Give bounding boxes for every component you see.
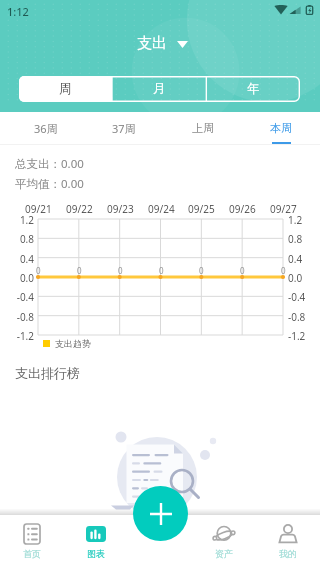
staticText: 月 xyxy=(153,81,166,97)
staticText: 支出 xyxy=(137,34,167,53)
staticText: 0 xyxy=(36,265,41,276)
staticText: 0.0 xyxy=(288,271,303,285)
staticText: -0.8 xyxy=(1,310,34,324)
staticText: 年 xyxy=(247,81,260,97)
staticText: -1.2 xyxy=(1,329,34,343)
staticText: -0.4 xyxy=(288,290,306,304)
staticText: 0 xyxy=(77,265,82,276)
staticText: 0 xyxy=(159,265,164,276)
staticText: 09/23 xyxy=(107,202,134,216)
staticText: 09/21 xyxy=(25,202,52,216)
staticText: 09/26 xyxy=(229,202,256,216)
staticText: 0.0 xyxy=(1,271,34,285)
staticText: 36周 xyxy=(34,121,58,136)
staticText: 0 xyxy=(118,265,123,276)
staticText: 总支出：0.00 xyxy=(15,156,84,172)
button[interactable]: 本周 xyxy=(242,112,320,145)
staticText: 支出排行榜 xyxy=(15,365,80,381)
staticText: 上周 xyxy=(192,121,214,135)
staticText: 本周 xyxy=(270,121,292,135)
staticText: 图表 xyxy=(87,548,105,559)
staticText: -0.4 xyxy=(1,290,34,304)
button[interactable]: 上周 xyxy=(164,112,242,145)
staticText: 周 xyxy=(59,81,72,97)
staticText: 首页 xyxy=(23,548,41,559)
staticText: 0 xyxy=(199,265,204,276)
staticText: 0 xyxy=(281,265,286,276)
staticText: -0.8 xyxy=(288,310,306,324)
staticText: 09/25 xyxy=(188,202,215,216)
button[interactable]: 年 xyxy=(206,76,300,102)
button[interactable]: Add record xyxy=(133,486,188,541)
staticText: 0.8 xyxy=(288,232,303,246)
button[interactable]: 资产 xyxy=(192,514,256,568)
staticText: 我的 xyxy=(279,548,297,559)
staticText: 平均值：0.00 xyxy=(15,176,84,192)
button[interactable]: 首页 xyxy=(0,514,64,568)
staticText: 1:12 xyxy=(7,4,29,19)
button[interactable]: 周 xyxy=(19,76,112,102)
staticText: 0.4 xyxy=(288,252,303,266)
staticText: 支出趋势 xyxy=(55,338,91,349)
staticText: 09/22 xyxy=(66,202,93,216)
button[interactable]: 月 xyxy=(112,76,206,102)
staticText: 0 xyxy=(240,265,245,276)
staticText: 37周 xyxy=(112,121,136,136)
button[interactable]: 我的 xyxy=(256,514,320,568)
staticText: -1.2 xyxy=(288,329,306,343)
staticText: 09/24 xyxy=(148,202,175,216)
staticText: 09/27 xyxy=(270,202,297,216)
staticText: 1.2 xyxy=(288,213,303,227)
button[interactable]: 37周 xyxy=(85,112,163,145)
button[interactable]: 36周 xyxy=(7,112,85,145)
staticText: 资产 xyxy=(215,548,233,559)
staticText: 0.4 xyxy=(1,252,34,266)
staticText: 0.8 xyxy=(1,232,34,246)
button[interactable]: 图表 xyxy=(64,514,128,568)
staticText: 1.2 xyxy=(1,213,34,227)
